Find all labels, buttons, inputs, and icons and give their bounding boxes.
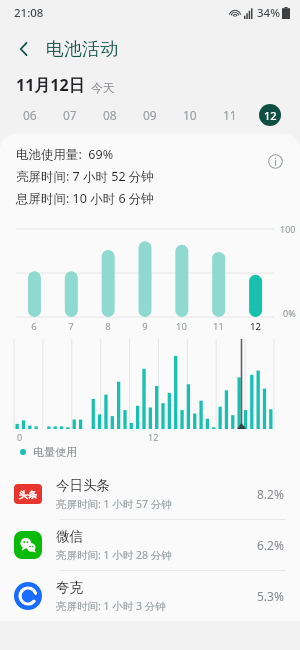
staticText: 100 — [280, 223, 296, 235]
staticText: 12 — [148, 431, 159, 443]
button[interactable]: 07 — [50, 100, 90, 130]
staticText: 头条 — [19, 489, 37, 500]
staticText: 6 — [31, 320, 37, 333]
staticText: 11月12日 — [16, 74, 85, 96]
button[interactable]: 06 — [10, 100, 50, 130]
staticText: 12 — [250, 320, 261, 333]
staticText: 09 — [143, 107, 157, 123]
staticText: 5.3% — [257, 588, 284, 604]
button[interactable]: 11 — [210, 100, 250, 130]
staticText: 06 — [23, 107, 37, 123]
staticText: 34% — [257, 5, 280, 21]
staticText: 9 — [142, 320, 148, 333]
staticText: 08 — [103, 107, 117, 123]
staticText: 0 — [17, 431, 23, 443]
button[interactable]: 12 — [250, 100, 290, 130]
staticText: 微信 — [56, 528, 83, 545]
staticText: 8.2% — [257, 486, 284, 502]
staticText: 0% — [283, 307, 296, 319]
staticText: 亮屏时间: 1 小时 28 分钟 — [56, 548, 172, 562]
staticText: 电池使用量: 69% — [16, 146, 114, 163]
staticText: 今天 — [91, 80, 115, 95]
button[interactable]: 10 — [170, 100, 210, 130]
staticText: 11 — [213, 320, 224, 333]
button[interactable]: Info — [260, 146, 290, 176]
staticText: 亮屏时间: 7 小时 52 分钟 — [16, 168, 154, 185]
staticText: 11 — [223, 107, 237, 123]
staticText: 10 — [176, 320, 187, 333]
staticText: 电池活动 — [46, 38, 118, 61]
button[interactable]: Back — [6, 31, 42, 67]
staticText: 6.2% — [257, 537, 284, 553]
staticText: 夸克 — [56, 579, 83, 596]
button[interactable]: 夸克 — [0, 571, 300, 621]
staticText: 今日头条 — [56, 477, 110, 494]
staticText: 息屏时间: 10 小时 6 分钟 — [16, 190, 154, 207]
button[interactable]: 08 — [90, 100, 130, 130]
staticText: 07 — [63, 107, 77, 123]
button[interactable]: 微信 — [0, 520, 300, 570]
staticText: 21:08 — [14, 5, 44, 21]
button[interactable]: 09 — [130, 100, 170, 130]
staticText: 亮屏时间: 1 小时 57 分钟 — [56, 497, 172, 511]
staticText: 12 — [264, 108, 277, 123]
staticText: 8 — [105, 320, 111, 333]
staticText: 7 — [68, 320, 74, 333]
button[interactable]: 头条 — [0, 469, 300, 519]
staticText: 亮屏时间: 1 小时 3 分钟 — [56, 599, 166, 613]
staticText: 电量使用 — [33, 445, 77, 459]
staticText: 10 — [183, 107, 197, 123]
